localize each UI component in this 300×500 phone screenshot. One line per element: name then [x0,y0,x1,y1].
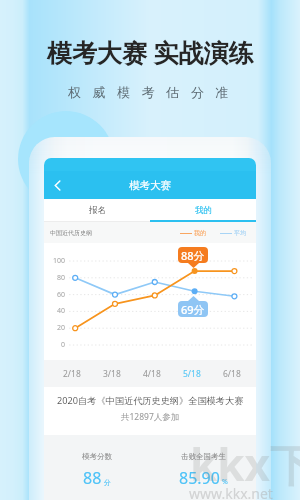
staticText: 我的 [195,205,212,216]
button[interactable]: 我的 [150,199,256,222]
button[interactable]: 返回 [44,171,70,199]
staticText: 2/18 [63,368,81,380]
staticText: 模考大赛 [129,179,171,192]
staticText: 40 [57,306,66,316]
staticText: 平均 [234,229,246,237]
staticText: 共12897人参加 [121,411,180,423]
button[interactable]: 报名 [44,199,150,222]
staticText: 2020自考《中国近代历史史纲》全国模考大赛 [57,394,244,407]
staticText: % [222,477,228,487]
staticText: 3/18 [103,368,121,380]
staticText: 60 [57,290,66,300]
staticText: 模考分数 [82,452,112,461]
staticText: 80 [57,273,66,283]
staticText: 模考大赛 实战演练 [47,35,254,69]
staticText: www.kkx.net [189,484,273,500]
staticText: 20 [57,323,66,333]
staticText: kkx下载 [190,434,300,494]
staticText: 6/18 [223,368,241,380]
staticText: 我的 [194,229,206,237]
staticText: 88 [83,467,102,489]
staticText: 4/18 [143,368,161,380]
staticText: 88分 [181,248,205,263]
staticText: 100 [53,256,66,266]
staticText: 5/18 [183,368,201,380]
staticText: 0 [61,340,66,350]
staticText: 权 威 模 考 估 分 准 [68,83,233,101]
staticText: 69分 [181,302,205,317]
staticText: 中国近代历史纲 [50,229,92,237]
staticText: 分 [104,478,111,487]
staticText: 击败全国考生 [181,452,226,461]
staticText: 85.90 [179,467,220,489]
staticText: 报名 [89,205,106,216]
